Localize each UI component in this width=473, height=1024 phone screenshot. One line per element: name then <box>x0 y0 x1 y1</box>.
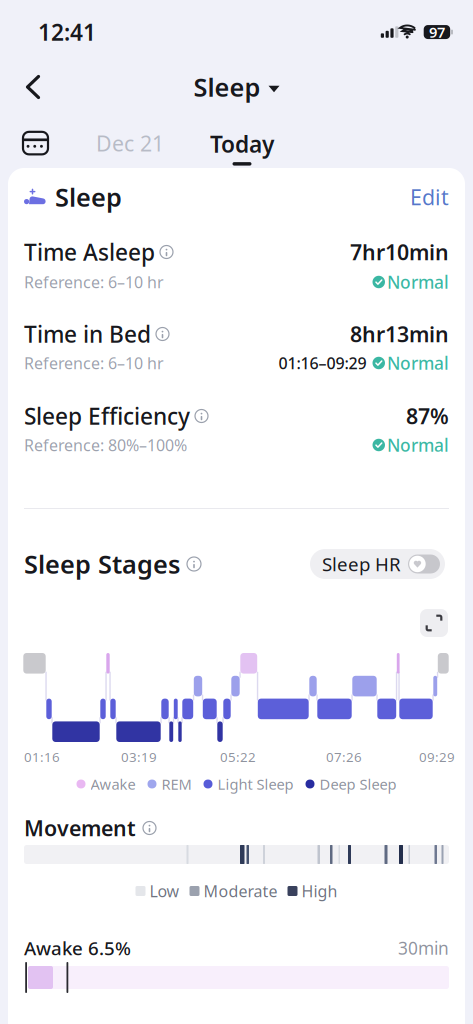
staticText: Normal <box>387 270 449 293</box>
staticText: 87% <box>406 402 449 430</box>
staticText: Sleep Stages <box>24 547 180 581</box>
staticText: Time Asleep <box>24 237 155 267</box>
staticText: 97 <box>429 22 445 42</box>
button[interactable]: Sleep <box>193 70 279 104</box>
staticText: Sleep <box>193 70 260 104</box>
staticText: 09:29 <box>419 748 455 766</box>
staticText: Low <box>149 880 179 902</box>
button[interactable]: Expand <box>420 609 448 637</box>
staticText: Reference: 6–10 hr <box>24 352 164 374</box>
staticText: High <box>301 880 337 902</box>
staticText: Normal <box>387 433 449 456</box>
staticText: Light Sleep <box>217 774 293 794</box>
staticText: 03:19 <box>121 748 157 766</box>
button[interactable]: Edit <box>410 183 449 211</box>
staticText: Dec 21 <box>96 129 164 157</box>
button[interactable]: Calendar <box>21 129 48 154</box>
staticText: Today <box>210 129 274 159</box>
staticText: Sleep <box>55 180 122 214</box>
staticText: Time in Bed <box>24 319 151 349</box>
staticText: 01:16–09:29 <box>278 352 366 374</box>
staticText: Sleep HR <box>322 552 401 576</box>
staticText: 7hr10min <box>350 238 449 266</box>
staticText: 01:16 <box>24 748 60 766</box>
staticText: 07:26 <box>326 748 362 766</box>
button[interactable]: Today <box>210 129 274 166</box>
staticText: Sleep Efficiency <box>24 401 190 431</box>
staticText: 8hr13min <box>350 320 449 348</box>
staticText: REM <box>161 774 191 794</box>
staticText: Awake <box>90 774 135 794</box>
staticText: Reference: 6–10 hr <box>24 271 164 293</box>
staticText: 12:41 <box>38 17 96 47</box>
staticText: Deep Sleep <box>319 774 396 794</box>
button[interactable]: Sleep HR toggle <box>310 549 445 579</box>
button[interactable]: Back <box>0 75 40 99</box>
staticText: Moderate <box>203 880 277 902</box>
staticText: Awake 6.5% <box>24 936 131 960</box>
staticText: Movement <box>24 814 136 842</box>
staticText: 05:22 <box>220 748 256 766</box>
staticText: Normal <box>387 351 449 374</box>
staticText: Reference: 80%–100% <box>24 434 187 456</box>
button[interactable]: Dec 21 <box>96 129 164 157</box>
staticText: 30min <box>398 936 449 959</box>
staticText: Edit <box>410 183 449 211</box>
